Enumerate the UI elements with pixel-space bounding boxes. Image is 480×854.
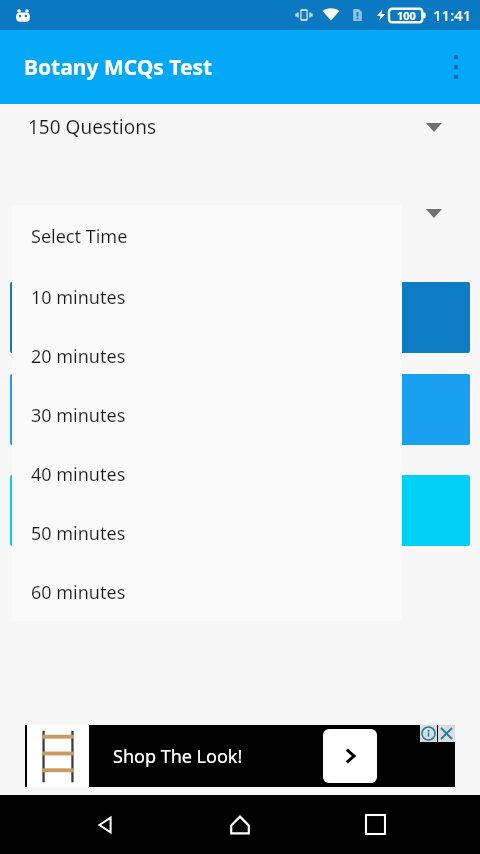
button[interactable]: Back (75, 795, 135, 854)
button[interactable]: 40 minutes (12, 445, 402, 504)
staticText: 60 minutes (31, 580, 126, 605)
button[interactable]: Question Guide (10, 475, 470, 546)
button[interactable]: More options (432, 30, 480, 104)
staticText: 150 Questions (28, 114, 157, 140)
staticText: Botany MCQs Test (24, 53, 213, 82)
button[interactable] (10, 374, 470, 445)
staticText: 30 minutes (31, 403, 126, 428)
button[interactable]: Advertisement (25, 725, 455, 787)
button[interactable]: 30 minutes (12, 386, 402, 445)
button[interactable]: Select Time (12, 205, 402, 268)
button[interactable]: 50 minutes (12, 504, 402, 563)
button[interactable] (10, 282, 470, 353)
button[interactable]: 60 minutes (12, 563, 402, 621)
button[interactable]: 150 Questions (0, 104, 480, 150)
staticText: 20 minutes (31, 344, 126, 369)
staticText: 50 minutes (31, 521, 126, 546)
button[interactable]: Home (210, 795, 270, 854)
staticText: Shop The Look! (113, 744, 243, 769)
staticText: 11:41 (433, 5, 472, 25)
staticText: 10 minutes (31, 285, 126, 310)
button[interactable]: Close ad (438, 725, 455, 742)
button[interactable]: Open ad (323, 729, 377, 783)
button[interactable]: 20 minutes (12, 327, 402, 386)
button[interactable]: Select Time (0, 190, 480, 236)
button[interactable]: Recent apps (345, 795, 405, 854)
staticText: 40 minutes (31, 462, 126, 487)
staticText: Select Time (31, 224, 128, 249)
button[interactable]: 10 minutes (12, 268, 402, 327)
staticText: 100 (397, 8, 416, 23)
